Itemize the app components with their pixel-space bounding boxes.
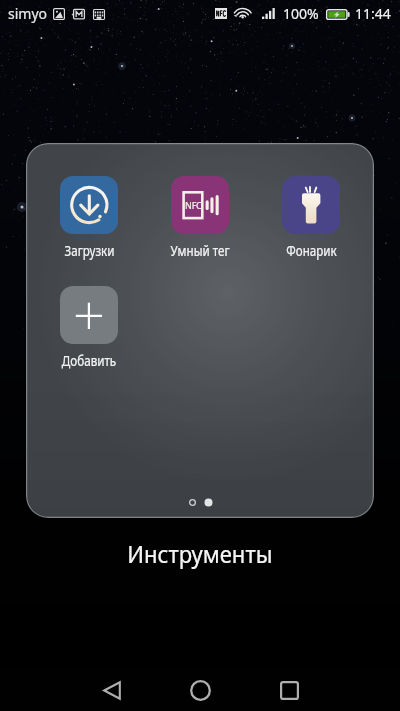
staticText: Инструменты [127,537,273,570]
staticText: simyo [8,4,48,23]
button[interactable]: Добавить [39,286,139,370]
staticText: 100% [283,4,319,23]
staticText: Фонарик [286,241,337,260]
button[interactable]: Фонарик [261,176,361,260]
button[interactable]: Home [165,670,235,711]
staticText: Загрузки [64,241,115,260]
button[interactable]: NFC [150,176,250,260]
button[interactable]: Загрузки [39,176,139,260]
staticText: NFC [185,199,202,211]
staticText: 11:44 [355,4,391,23]
staticText: Умный тег [170,241,230,260]
staticText: Добавить [62,351,116,370]
button[interactable]: Back [77,670,147,711]
button[interactable]: Recents [254,670,324,711]
